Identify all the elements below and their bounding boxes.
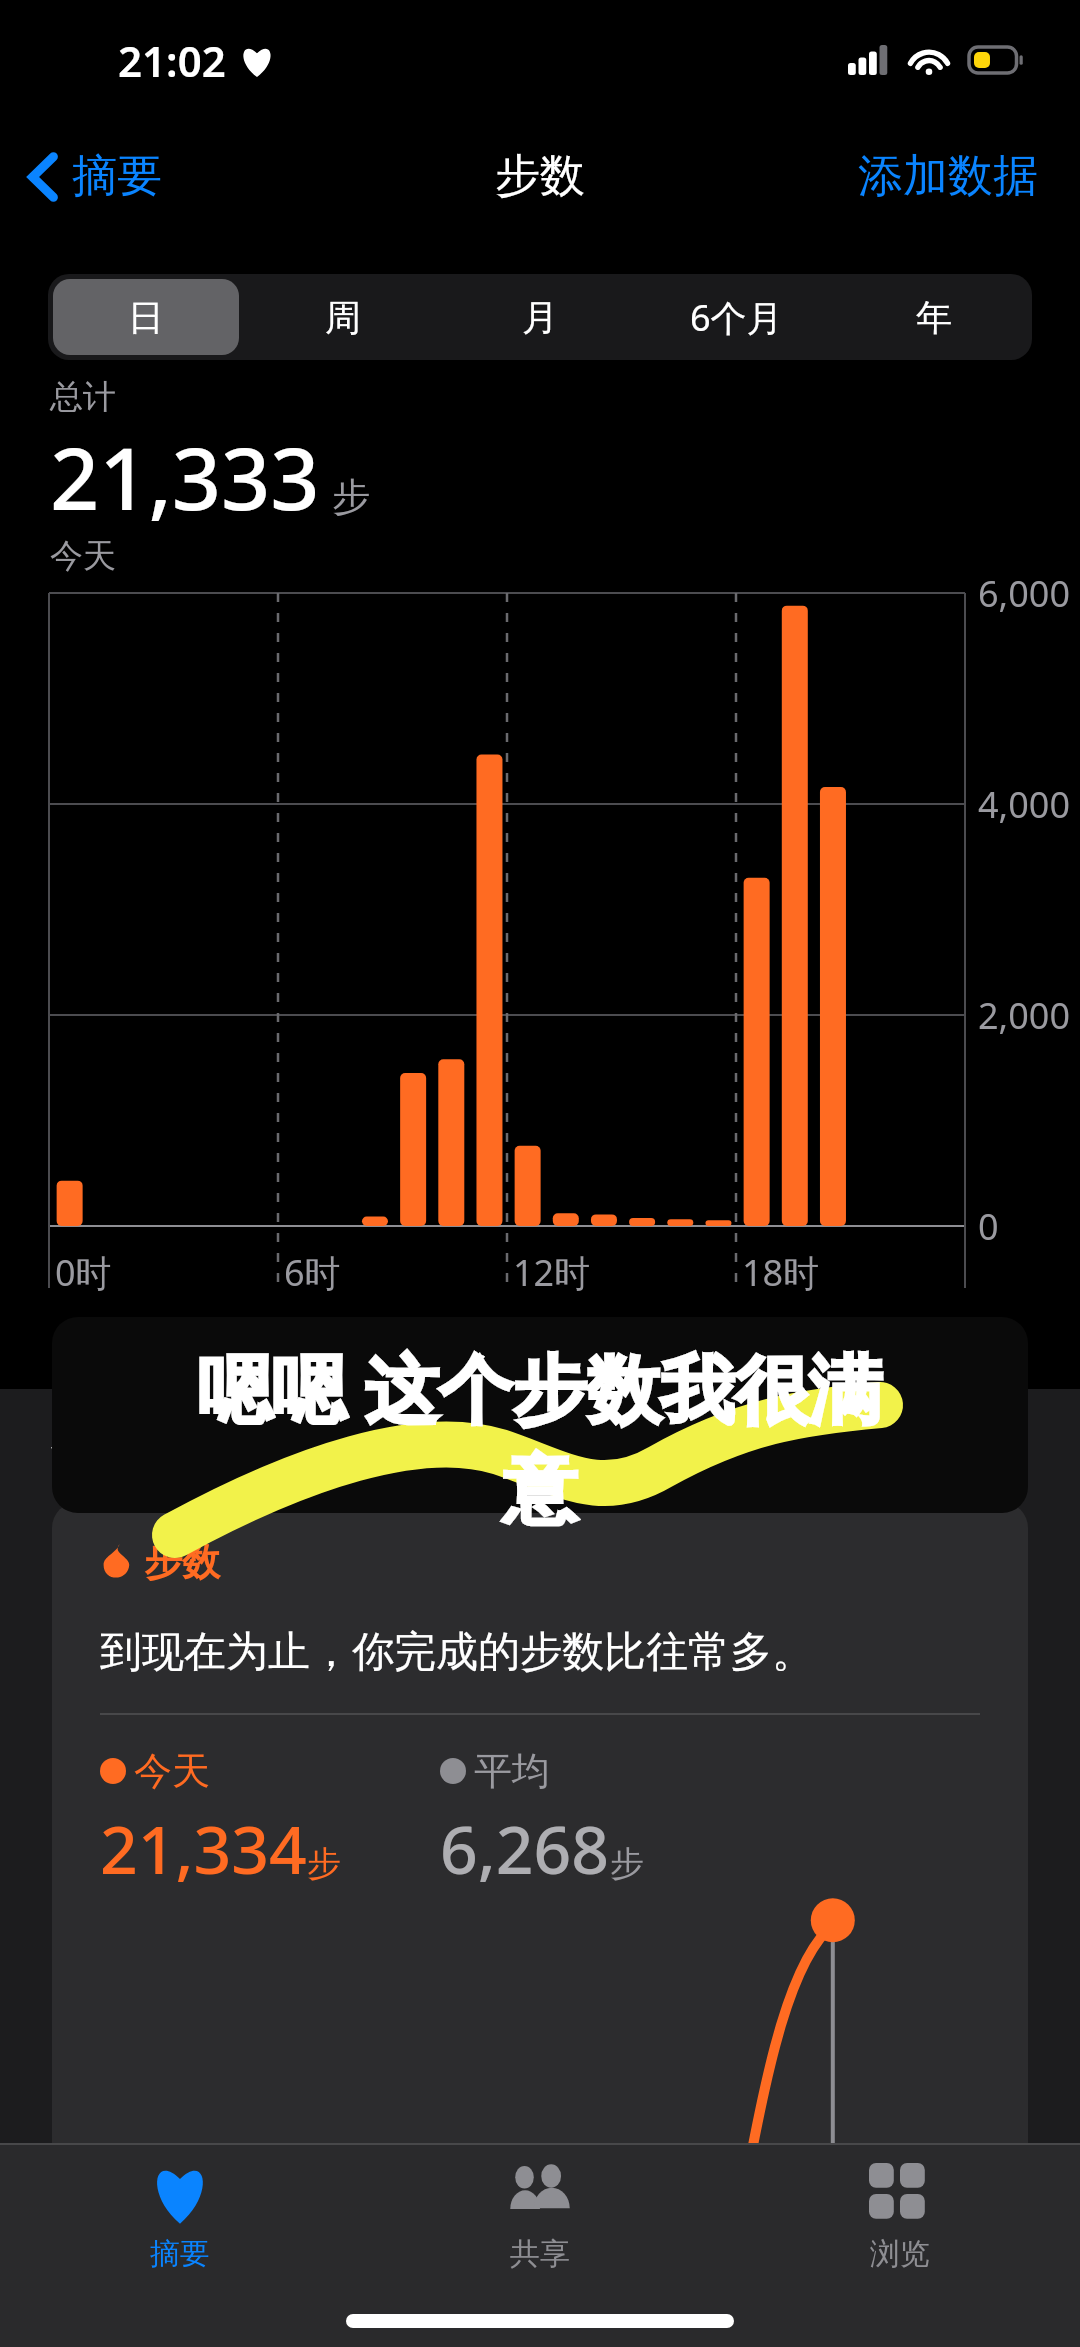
button[interactable]: 添加数据 [852, 142, 1044, 211]
staticText: 6,000 [978, 569, 1071, 618]
staticText: 18时 [742, 1248, 820, 1297]
staticText: 摘要 [72, 148, 162, 205]
staticText: 12时 [513, 1248, 591, 1297]
button[interactable]: 摘要 [0, 2145, 360, 2295]
staticText: 步 [332, 473, 370, 521]
staticText: 步数 [495, 148, 585, 205]
button[interactable]: 年 [840, 279, 1027, 355]
staticText: 摘要 [150, 2235, 210, 2273]
staticText: 21,333 [50, 418, 320, 535]
staticText: 周 [325, 295, 361, 340]
staticText: 步 [307, 1842, 341, 1885]
staticText: 4,000 [978, 780, 1071, 829]
staticText: 今天 [134, 1747, 210, 1795]
staticText: 步 [610, 1842, 644, 1885]
staticText: 0时 [55, 1248, 112, 1297]
button[interactable]: 6个月 [643, 279, 830, 355]
staticText: 6,268 [440, 1803, 610, 1893]
staticText: 意 [503, 1444, 577, 1537]
button[interactable]: 全部显示 [860, 1420, 1028, 1473]
staticText: 2,000 [978, 991, 1071, 1040]
staticText: 今天 [50, 535, 116, 577]
staticText: 到现在为止，你完成的步数比往常多。 [100, 1626, 814, 1679]
staticText: 共享 [510, 2235, 570, 2273]
button[interactable]: 月 [446, 279, 633, 355]
staticText: 平均 [474, 1747, 550, 1795]
staticText: 21:02 [118, 32, 226, 89]
staticText: 0 [978, 1202, 999, 1251]
button[interactable]: 步数 [52, 1502, 1028, 2347]
staticText: 浏览 [870, 2235, 930, 2273]
staticText: 6时 [284, 1248, 341, 1297]
staticText: 嗯嗯 这个步数我很满 [197, 1337, 883, 1438]
button[interactable]: 周 [249, 279, 436, 355]
button[interactable]: 浏览 [720, 2145, 1080, 2295]
button[interactable]: 摘要 [22, 136, 170, 217]
staticText: 步数 [144, 1538, 220, 1586]
staticText: 21,334 [100, 1803, 307, 1893]
staticText: 6个月 [690, 293, 783, 342]
button[interactable]: 共享 [360, 2145, 720, 2295]
staticText: 总计 [50, 376, 116, 418]
staticText: 日 [128, 295, 164, 340]
button[interactable]: 日 [53, 279, 239, 355]
staticText: 年 [916, 295, 952, 340]
staticText: 月 [522, 295, 558, 340]
